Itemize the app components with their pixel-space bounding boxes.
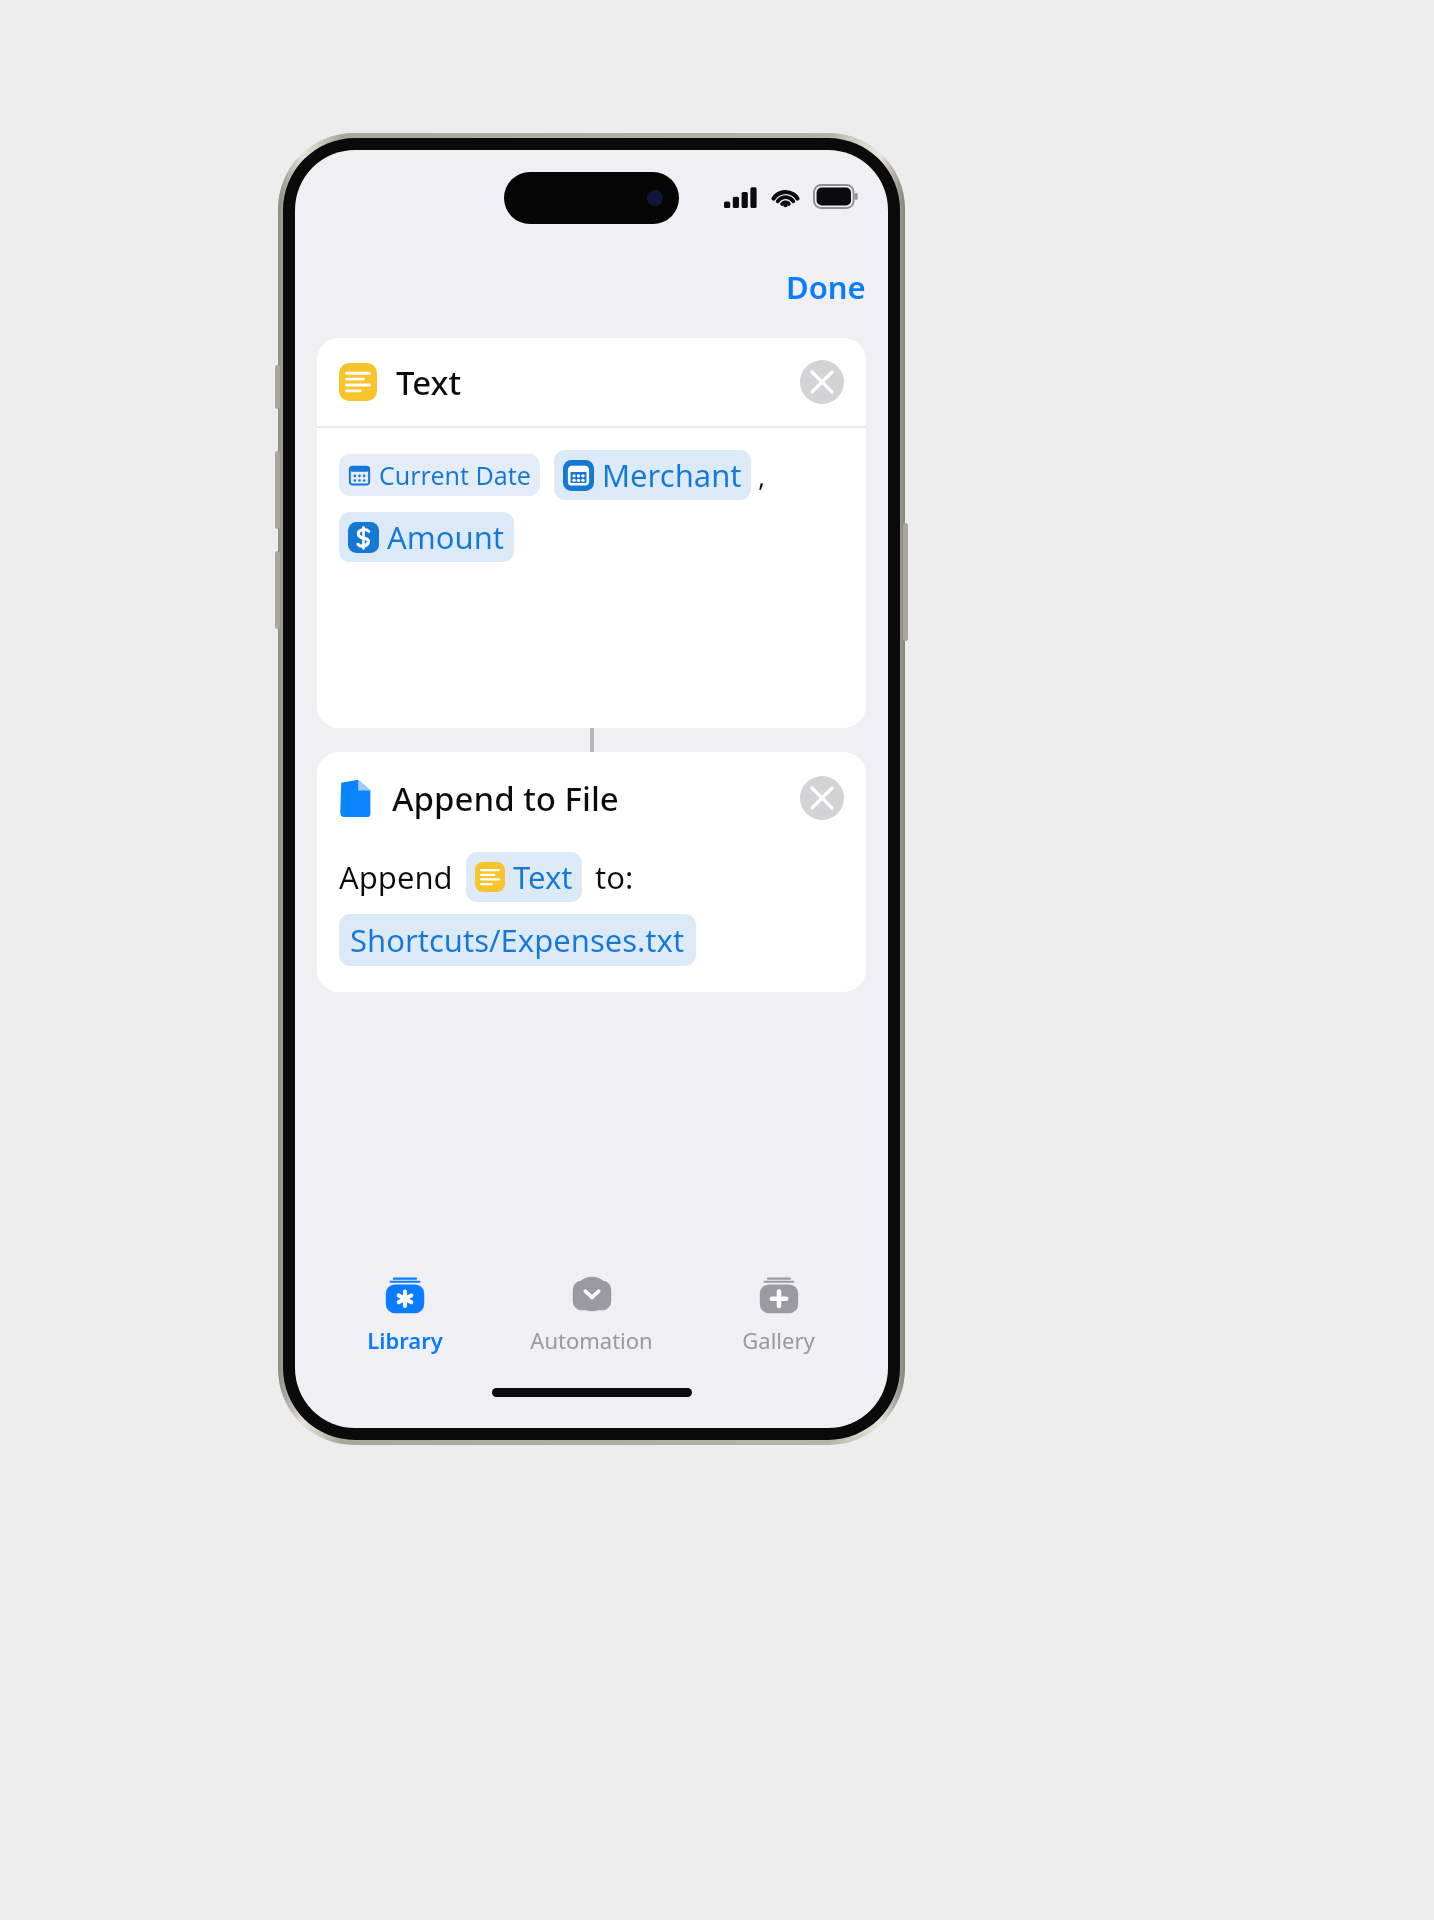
staticText: Shortcuts/Expenses.txt [350, 919, 685, 961]
staticText: Text [513, 856, 573, 898]
button[interactable]: Text [317, 338, 866, 728]
button[interactable]: Current Date [339, 454, 540, 496]
button[interactable]: Append to File [317, 752, 866, 992]
staticText: Library [367, 1325, 443, 1355]
button[interactable]: Remove action [800, 776, 844, 820]
button[interactable]: Done [764, 260, 888, 314]
staticText: Merchant [602, 454, 742, 496]
staticText: Append to File [392, 776, 619, 821]
button[interactable]: Remove action [800, 360, 844, 404]
button[interactable]: Shortcuts/Expenses.txt [339, 914, 696, 966]
staticText: Automation [530, 1325, 653, 1355]
button[interactable]: Amount [339, 512, 514, 562]
button[interactable]: Automation [498, 1256, 685, 1355]
staticText: Current Date [379, 458, 531, 492]
staticText: Amount [387, 516, 505, 558]
staticText: Text [396, 360, 462, 405]
staticText: to: [595, 856, 634, 898]
button[interactable]: Text [466, 852, 582, 902]
button[interactable]: Gallery [685, 1256, 872, 1355]
staticText: , [751, 457, 766, 494]
button[interactable]: Library [311, 1256, 498, 1355]
button[interactable]: Merchant [554, 450, 751, 500]
staticText: Append [339, 856, 453, 898]
staticText: Gallery [742, 1325, 815, 1355]
staticText: Done [786, 266, 866, 308]
